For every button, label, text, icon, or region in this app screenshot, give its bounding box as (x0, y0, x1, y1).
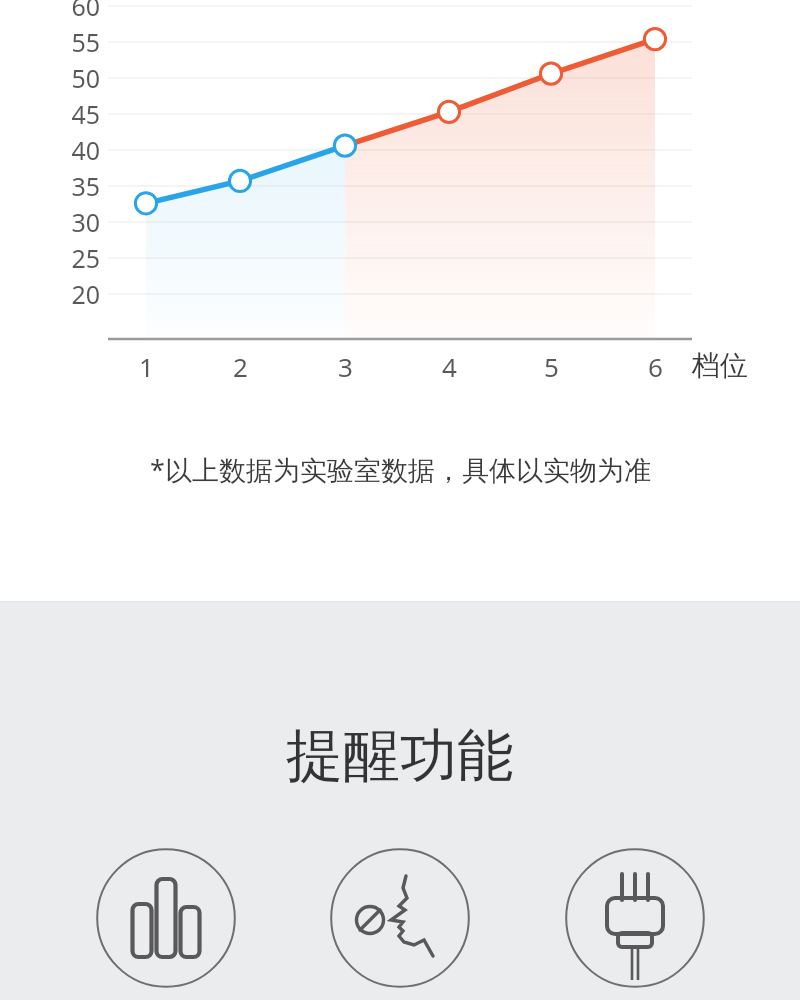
staticText: 25 (71, 241, 100, 275)
staticText: 2 (233, 349, 248, 384)
button[interactable]: Plug in power reminder (565, 848, 705, 988)
staticText: 4 (442, 349, 457, 384)
staticText: 提醒功能 (286, 720, 514, 792)
button[interactable]: Air quality level indicator (96, 848, 236, 988)
staticText: 40 (71, 133, 100, 167)
staticText: *以上数据为实验室数据，具体以实物为准 (150, 451, 651, 488)
staticText: 档位 (692, 348, 748, 383)
staticText: 30 (71, 205, 100, 239)
staticText: 20 (71, 277, 100, 311)
staticText: 55 (71, 25, 100, 59)
staticText: 6 (648, 349, 663, 384)
staticText: 45 (71, 97, 100, 131)
staticText: 35 (71, 169, 100, 203)
staticText: 1 (139, 349, 154, 384)
button[interactable]: Odor free reminder (330, 848, 470, 988)
staticText: 3 (338, 349, 353, 384)
staticText: 50 (71, 61, 100, 95)
staticText: 5 (544, 349, 559, 384)
staticText: 60 (71, 0, 100, 23)
